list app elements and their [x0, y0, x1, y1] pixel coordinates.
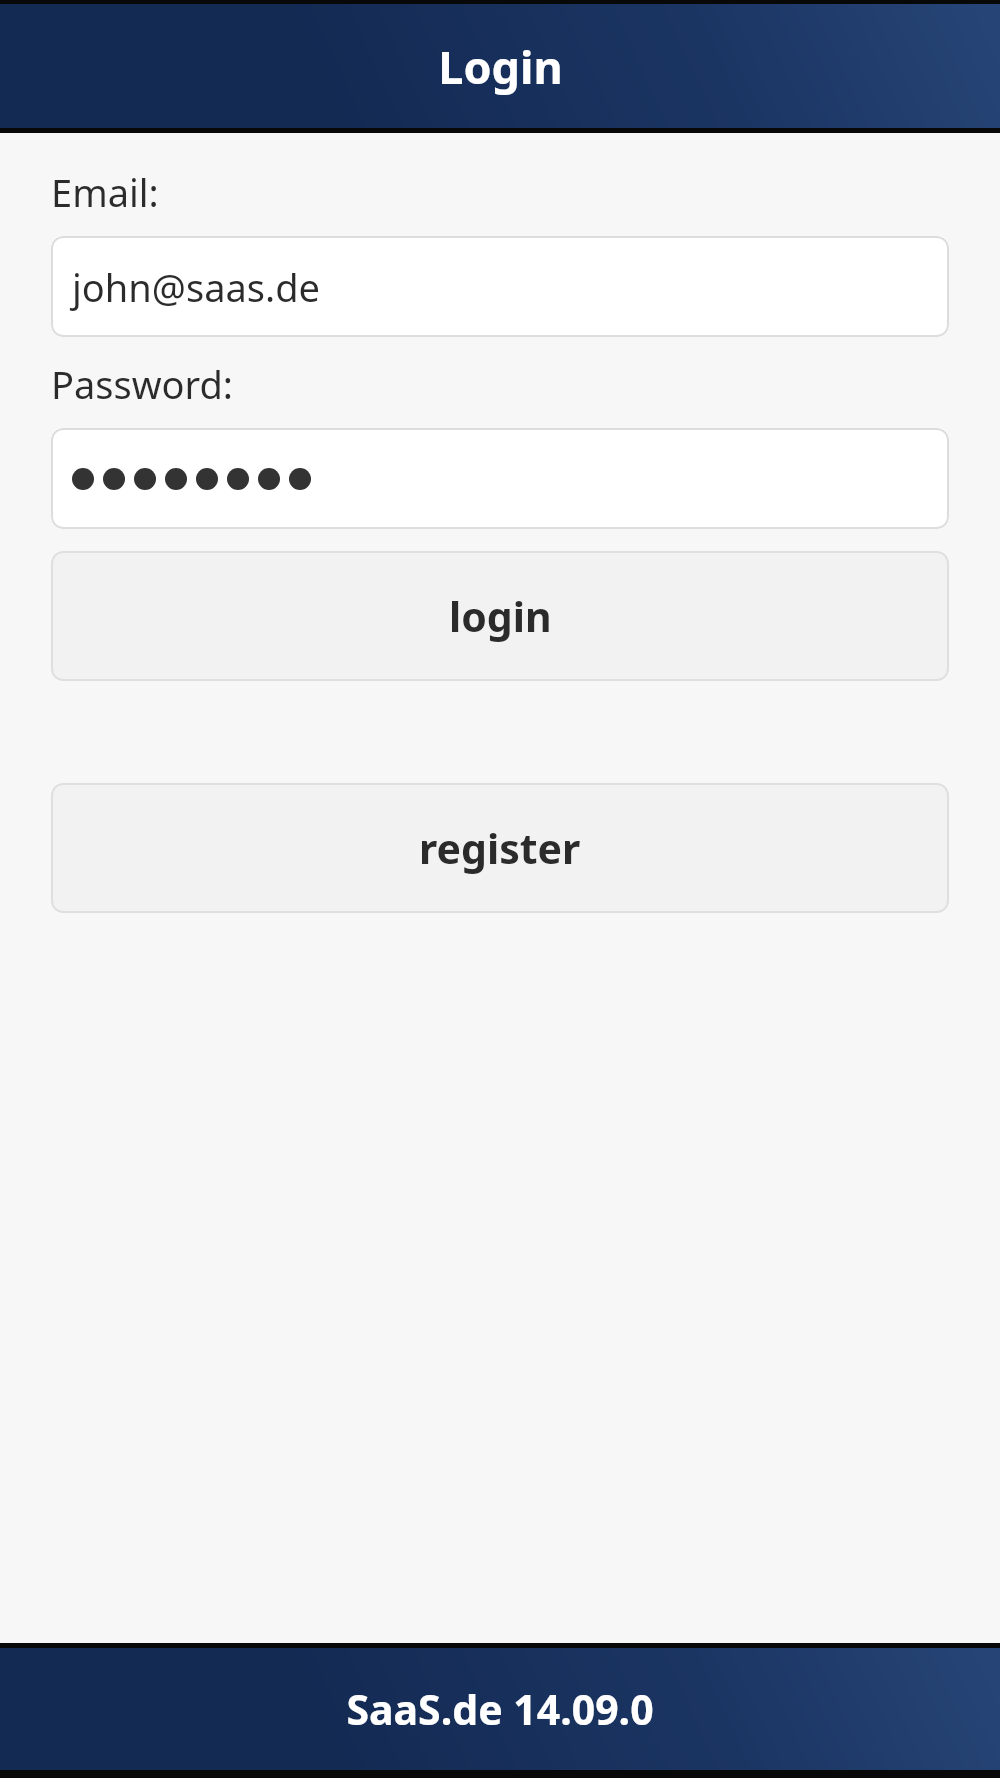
button[interactable]: register — [51, 783, 949, 913]
button[interactable]: login — [51, 551, 949, 681]
staticText: Login — [438, 36, 563, 97]
staticText: login — [449, 588, 552, 644]
staticText: john@saas.de — [72, 261, 320, 313]
staticText: Password: — [51, 358, 234, 410]
button[interactable]: Email input — [51, 236, 949, 337]
staticText: SaaS.de 14.09.0 — [346, 1681, 654, 1737]
staticText: register — [419, 820, 581, 876]
staticText: Email: — [51, 166, 159, 218]
button[interactable]: Password input — [51, 428, 949, 529]
